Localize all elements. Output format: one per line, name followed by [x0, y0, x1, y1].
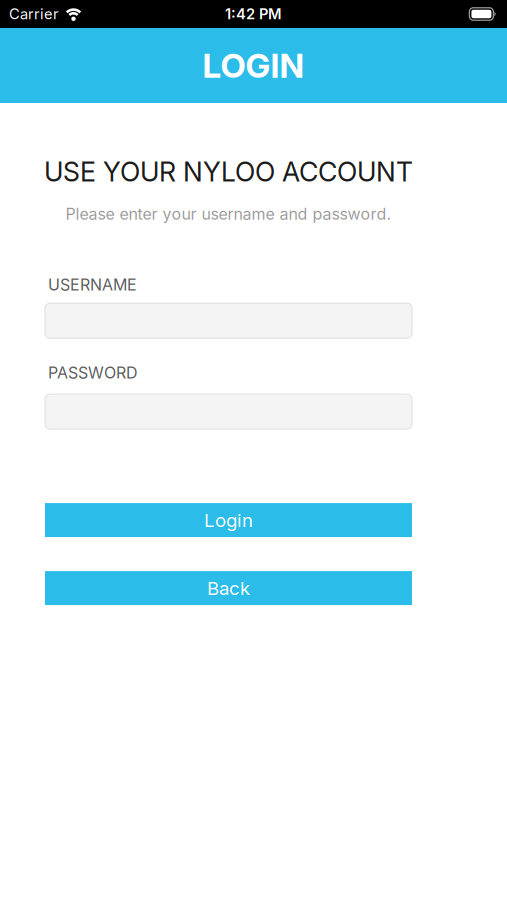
staticText: LOGIN — [202, 46, 304, 85]
staticText: Login — [204, 509, 253, 531]
button[interactable]: Login — [45, 503, 412, 537]
staticText: PASSWORD — [48, 363, 138, 382]
staticText: 1:42 PM — [225, 5, 282, 23]
staticText: USERNAME — [48, 275, 137, 294]
staticText: Please enter your username and password. — [65, 204, 391, 223]
staticText: Back — [207, 577, 250, 599]
staticText: Carrier — [9, 5, 59, 23]
button[interactable]: Back — [45, 571, 412, 605]
staticText: USE YOUR NYLOO ACCOUNT — [44, 156, 413, 187]
